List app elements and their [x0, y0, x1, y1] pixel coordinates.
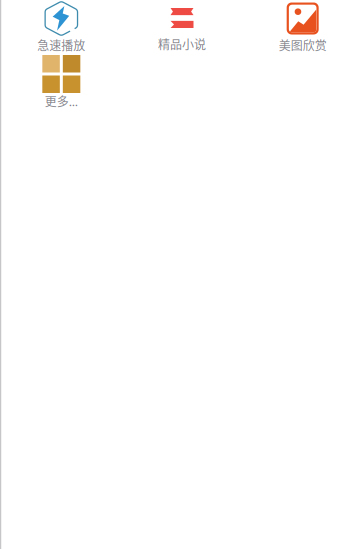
button[interactable]: 更多...	[1, 55, 122, 110]
staticText: 更多...	[45, 92, 78, 110]
staticText: 美图欣赏	[279, 36, 327, 54]
button[interactable]: 美图欣赏	[242, 0, 362, 55]
button[interactable]: 急速播放	[1, 0, 122, 55]
staticText: 急速播放	[37, 36, 85, 54]
staticText: 精品小说	[158, 35, 206, 53]
button[interactable]: 精品小说	[122, 0, 242, 55]
